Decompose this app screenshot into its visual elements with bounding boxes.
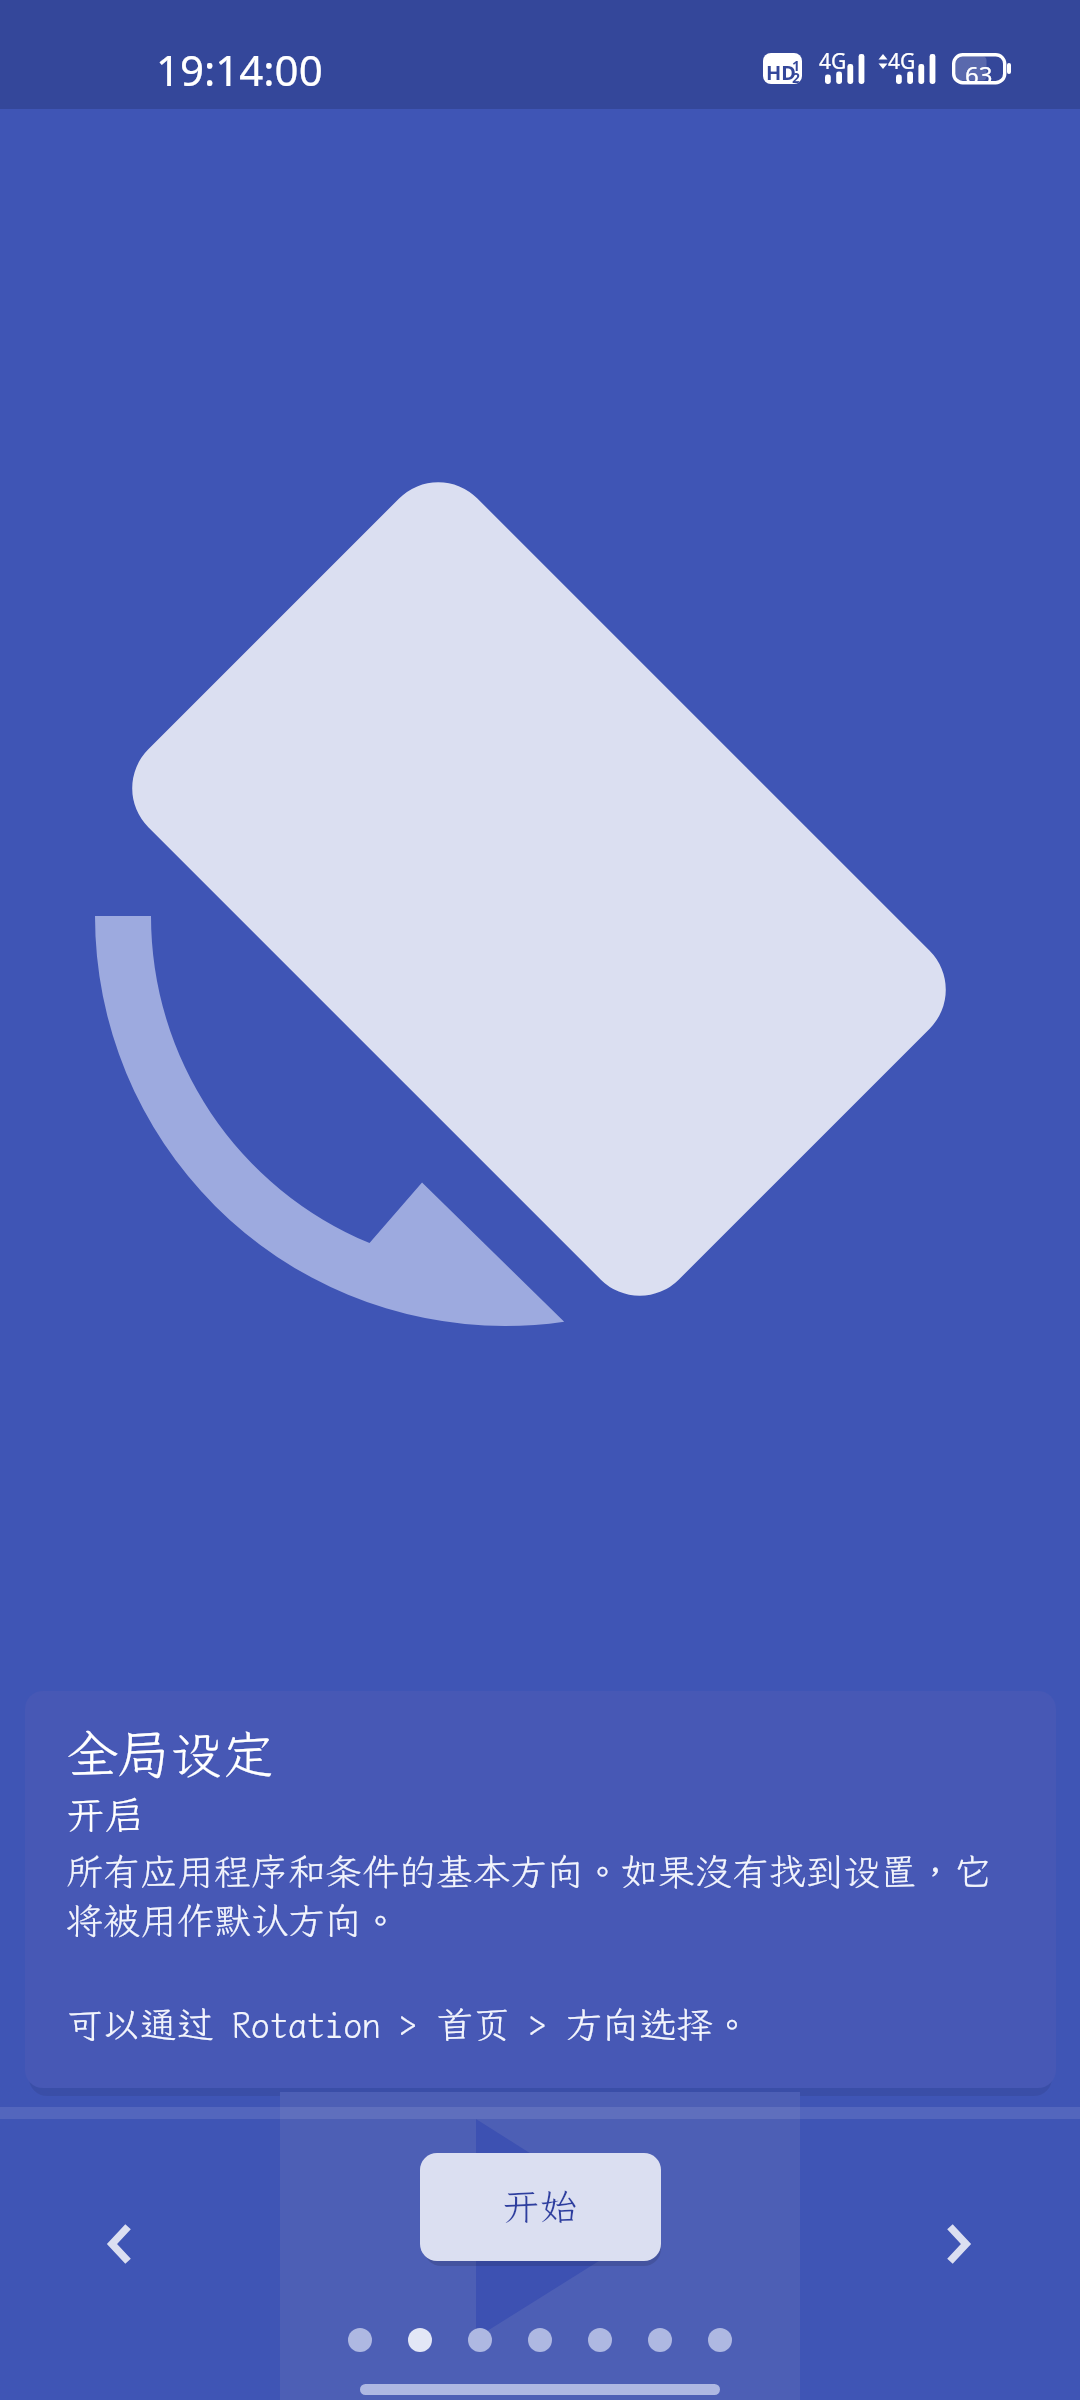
staticText: 所有应用程序和条件的基本方向。如果没有找到设置，它将被用作默认方向。 (66, 1851, 1016, 1943)
button[interactable]: 开始 (420, 2153, 661, 2261)
staticText: 全局设定 (66, 1725, 275, 1786)
staticText: 2 (792, 68, 801, 84)
staticText: 4G (888, 47, 916, 76)
staticText: 1 (792, 56, 801, 75)
button[interactable]: Previous (68, 2194, 168, 2294)
staticText: 可以通过 Rotation > 首页 > 方向选择。 (66, 2004, 751, 2047)
button[interactable]: 全局设定 (25, 1691, 1056, 2088)
staticText: 开启 (66, 1793, 145, 1839)
staticText: HD (766, 59, 796, 84)
staticText: 19:14:00 (156, 41, 323, 98)
button[interactable]: Next (910, 2194, 1010, 2294)
staticText: 开始 (502, 2185, 579, 2229)
staticText: 4G (819, 47, 847, 76)
staticText: 63 (965, 58, 993, 90)
